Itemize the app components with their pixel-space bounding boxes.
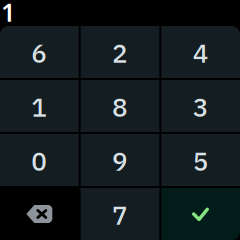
button[interactable]: 0 bbox=[0, 134, 79, 186]
staticText: 5 bbox=[193, 144, 209, 178]
button[interactable]: 5 bbox=[161, 134, 240, 186]
staticText: 6 bbox=[31, 36, 47, 70]
button[interactable]: Delete bbox=[0, 188, 79, 240]
button[interactable]: 8 bbox=[81, 80, 159, 132]
button[interactable]: 9 bbox=[81, 134, 159, 186]
staticText: 8 bbox=[112, 90, 128, 124]
staticText: 1 bbox=[1, 0, 15, 29]
button[interactable]: 2 bbox=[81, 26, 159, 78]
staticText: 0 bbox=[31, 144, 47, 178]
button[interactable]: 1 bbox=[0, 80, 79, 132]
staticText: 7 bbox=[112, 198, 128, 232]
button[interactable]: 4 bbox=[161, 26, 240, 78]
staticText: 1 bbox=[31, 90, 47, 124]
staticText: 4 bbox=[193, 36, 209, 70]
button[interactable]: 7 bbox=[81, 188, 159, 240]
staticText: 3 bbox=[193, 90, 209, 124]
button[interactable]: 3 bbox=[161, 80, 240, 132]
staticText: 9 bbox=[112, 144, 128, 178]
button[interactable]: Confirm bbox=[161, 188, 240, 240]
staticText: 2 bbox=[112, 36, 128, 70]
button[interactable]: 6 bbox=[0, 26, 79, 78]
